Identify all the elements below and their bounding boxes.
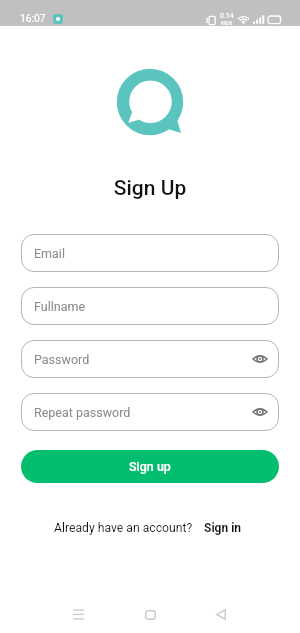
staticText: Password [34,352,90,367]
staticText: Fullname [34,299,86,314]
button[interactable]: Show password [252,354,268,364]
button[interactable]: Email [21,234,279,272]
button[interactable]: Back [201,595,241,633]
staticText: Already have an account? [54,521,193,535]
staticText: Sign in [204,521,242,535]
button[interactable]: Show password [252,407,268,417]
staticText: Sign Up [0,176,300,201]
staticText: KB/S [221,20,233,26]
staticText: Sign up [129,459,171,474]
button[interactable]: Fullname [21,287,279,325]
button[interactable]: Home [130,595,170,633]
button[interactable]: Password [21,340,279,378]
button[interactable]: Sign up [21,450,279,483]
staticText: 0.14 [220,12,234,20]
button[interactable]: Recent apps [58,595,98,633]
button[interactable]: Repeat password [21,393,279,431]
staticText: 16:07 [20,12,46,24]
staticText: Email [34,246,65,261]
staticText: Repeat password [34,405,131,420]
button[interactable]: Sign in [204,521,242,535]
